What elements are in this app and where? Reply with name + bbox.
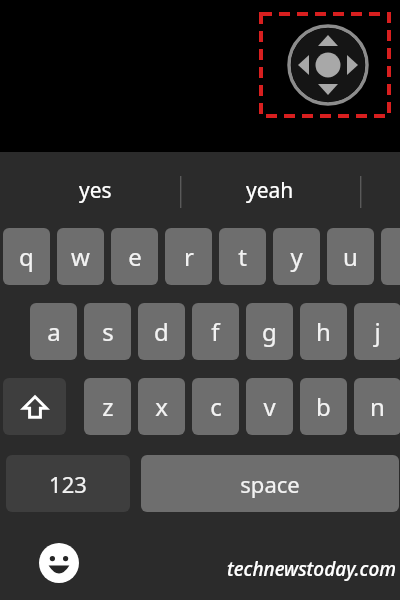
staticText: g (262, 315, 277, 348)
button[interactable]: g (246, 303, 293, 360)
button[interactable]: v (246, 378, 293, 435)
staticText: t (238, 240, 247, 273)
button[interactable]: f (192, 303, 239, 360)
staticText: b (316, 390, 331, 423)
button[interactable]: c (192, 378, 239, 435)
button[interactable]: n (354, 378, 400, 435)
button[interactable]: t (219, 228, 266, 285)
button[interactable]: e (111, 228, 158, 285)
staticText: h (316, 315, 331, 348)
button[interactable]: i (381, 228, 400, 285)
button[interactable]: h (300, 303, 347, 360)
button[interactable]: space (141, 455, 399, 512)
button[interactable]: yeah (185, 168, 355, 212)
staticText: 123 (49, 469, 87, 499)
button[interactable]: u (327, 228, 374, 285)
staticText: yeah (246, 176, 294, 205)
button[interactable]: z (84, 378, 131, 435)
staticText: z (102, 390, 114, 423)
staticText: a (47, 315, 61, 348)
staticText: s (102, 315, 114, 348)
staticText: f (211, 315, 220, 348)
button[interactable]: Shift (3, 378, 66, 435)
staticText: y (290, 240, 303, 273)
button[interactable]: yes (10, 168, 180, 212)
button[interactable]: b (300, 378, 347, 435)
button[interactable]: q (3, 228, 50, 285)
staticText: x (155, 390, 168, 423)
staticText: r (184, 240, 194, 273)
staticText: d (154, 315, 169, 348)
button[interactable]: D-pad navigation (255, 8, 395, 122)
staticText: yes (79, 176, 112, 205)
button[interactable]: a (30, 303, 77, 360)
button[interactable]: 123 (6, 455, 130, 512)
button[interactable]: r (165, 228, 212, 285)
staticText: technewstoday.com (200, 556, 396, 586)
staticText: w (71, 240, 90, 273)
staticText: q (19, 240, 34, 273)
button[interactable]: x (138, 378, 185, 435)
button[interactable]: d (138, 303, 185, 360)
staticText: n (370, 390, 385, 423)
button[interactable]: Emoji (38, 542, 80, 584)
button[interactable]: y (273, 228, 320, 285)
staticText: j (374, 315, 381, 348)
button[interactable]: s (84, 303, 131, 360)
staticText: v (263, 390, 276, 423)
staticText: u (343, 240, 358, 273)
button[interactable]: w (57, 228, 104, 285)
staticText: space (240, 469, 300, 499)
staticText: c (210, 390, 222, 423)
button[interactable]: j (354, 303, 400, 360)
staticText: e (128, 240, 142, 273)
